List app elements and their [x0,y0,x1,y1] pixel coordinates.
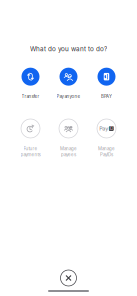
button[interactable]: Pay anyone [49,68,87,99]
staticText: payments [20,152,40,157]
staticText: What do you want to do? [30,45,107,53]
button[interactable]: Manage [49,119,87,157]
staticText: BPAY [101,94,112,99]
staticText: ID [109,126,113,131]
staticText: payees [61,152,76,157]
button[interactable]: BPAY [87,68,125,99]
button[interactable]: Pay [87,119,125,157]
staticText: Pay anyone [56,94,80,99]
button[interactable]: Transfer [11,68,49,99]
staticText: PayIDs [100,152,113,157]
staticText: Transfer [21,94,39,99]
staticText: Pay [99,125,108,132]
button[interactable]: Close [57,267,79,289]
button[interactable]: Future [11,119,49,157]
staticText: Manage [98,146,115,151]
staticText: Manage [60,146,77,151]
staticText: Future [23,146,37,151]
